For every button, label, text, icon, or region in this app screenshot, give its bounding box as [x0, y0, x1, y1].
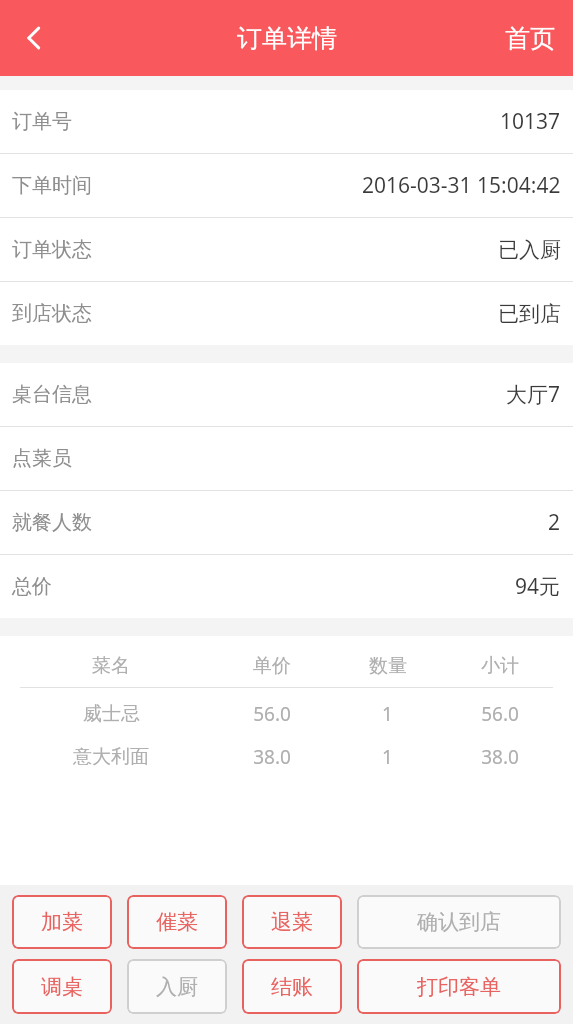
staticText: 94元: [515, 572, 561, 601]
staticText: 下单时间: [12, 173, 92, 198]
staticText: 38.0: [253, 744, 291, 770]
button[interactable]: 退菜: [242, 895, 342, 949]
staticText: 订单号: [12, 109, 72, 134]
staticText: 10137: [500, 107, 561, 136]
staticText: 38.0: [481, 744, 519, 770]
staticText: 总价: [12, 574, 52, 599]
button[interactable]: 打印客单: [357, 959, 561, 1014]
staticText: 到店状态: [12, 301, 92, 326]
button[interactable]: 调桌: [12, 959, 112, 1014]
staticText: 已到店: [498, 301, 561, 327]
button[interactable]: 订单状态: [0, 218, 573, 281]
staticText: 结账: [271, 974, 313, 1000]
button[interactable]: 入厨: [127, 959, 227, 1014]
staticText: 意大利面: [73, 745, 149, 769]
staticText: 小计: [481, 654, 519, 678]
staticText: 已入厨: [498, 237, 561, 263]
button[interactable]: 就餐人数: [0, 491, 573, 554]
button[interactable]: 确认到店: [357, 895, 561, 949]
button[interactable]: 总价: [0, 555, 573, 618]
staticText: 2016-03-31 15:04:42: [362, 171, 561, 200]
button[interactable]: Back: [6, 10, 62, 66]
staticText: 催菜: [156, 909, 198, 935]
button[interactable]: 订单号: [0, 90, 573, 153]
button[interactable]: 首页: [487, 13, 573, 64]
button[interactable]: 催菜: [127, 895, 227, 949]
button[interactable]: 加菜: [12, 895, 112, 949]
button[interactable]: 点菜员: [0, 427, 573, 490]
staticText: 菜名: [92, 654, 130, 678]
staticText: 威士忌: [83, 702, 140, 726]
staticText: 1: [382, 701, 393, 727]
staticText: 确认到店: [417, 909, 501, 935]
staticText: 加菜: [41, 909, 83, 935]
staticText: 首页: [505, 23, 555, 54]
button[interactable]: 到店状态: [0, 282, 573, 345]
staticText: 入厨: [156, 974, 198, 1000]
staticText: 订单状态: [12, 237, 92, 262]
staticText: 点菜员: [12, 446, 72, 471]
button[interactable]: 桌台信息: [0, 363, 573, 426]
staticText: 大厅7: [506, 380, 561, 409]
staticText: 打印客单: [417, 974, 501, 1000]
staticText: 订单详情: [237, 23, 337, 54]
staticText: 退菜: [271, 909, 313, 935]
staticText: 56.0: [481, 701, 519, 727]
button[interactable]: 结账: [242, 959, 342, 1014]
staticText: 就餐人数: [12, 510, 92, 535]
button[interactable]: 下单时间: [0, 154, 573, 217]
staticText: 调桌: [41, 974, 83, 1000]
staticText: 单价: [253, 654, 291, 678]
staticText: 56.0: [253, 701, 291, 727]
staticText: 2: [548, 508, 561, 537]
staticText: 桌台信息: [12, 382, 92, 407]
staticText: 数量: [369, 654, 407, 678]
staticText: 1: [382, 744, 393, 770]
